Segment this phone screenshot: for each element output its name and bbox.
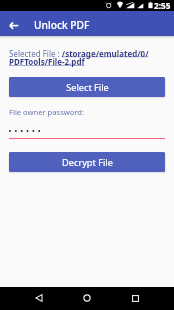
button[interactable]: Home xyxy=(79,290,95,306)
button[interactable]: Back xyxy=(4,14,24,34)
staticText: File owner password: xyxy=(9,107,85,117)
button[interactable]: Decrypt File xyxy=(9,152,165,172)
button[interactable]: Recents xyxy=(127,290,143,306)
staticText: Unlock PDF xyxy=(34,18,90,32)
staticText: 2:55 xyxy=(154,0,171,11)
staticText: Decrypt File xyxy=(62,156,113,169)
button[interactable]: Select File xyxy=(9,77,165,97)
staticText: Selected File : /storage/emulated/0/PDFT… xyxy=(9,48,168,67)
button[interactable]: Back xyxy=(31,290,47,306)
staticText: Select File xyxy=(66,81,109,94)
